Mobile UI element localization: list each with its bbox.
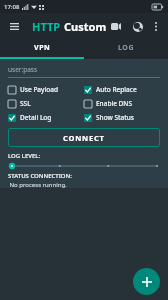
button[interactable]: Global settings	[129, 18, 146, 35]
button[interactable]: Auto Replace	[84, 85, 160, 94]
button[interactable]: CONNECT	[8, 128, 160, 147]
staticText: Auto Replace	[96, 85, 137, 94]
staticText: user:pass	[8, 65, 38, 74]
button[interactable]: Log level slider	[8, 162, 160, 170]
staticText: Show Status	[96, 113, 134, 122]
staticText: VPN	[34, 43, 51, 53]
staticText: LOG LEVEL:	[8, 152, 41, 160]
button[interactable]: Open navigation menu	[6, 18, 22, 34]
staticText: SSL	[20, 99, 31, 108]
staticText: HTTP	[32, 19, 61, 34]
button[interactable]: More options	[149, 19, 162, 33]
button[interactable]: Add configuration	[133, 268, 160, 295]
staticText: CONNECT	[63, 133, 105, 143]
staticText: No process running.	[8, 181, 67, 188]
staticText: Enable DNS	[96, 99, 132, 108]
button[interactable]: Detail Log	[8, 113, 84, 122]
staticText: LOG	[118, 43, 135, 53]
staticText: 17:08	[4, 3, 20, 11]
button[interactable]: SSL	[8, 99, 84, 108]
button[interactable]: VPN	[0, 39, 84, 57]
staticText: STATUS CONNECTION:	[8, 172, 72, 180]
button[interactable]: user:pass	[8, 65, 160, 78]
button[interactable]: Video	[107, 18, 124, 35]
button[interactable]: Use Payload	[8, 85, 84, 94]
button[interactable]: LOG	[84, 39, 168, 57]
staticText: Custom	[64, 19, 107, 34]
button[interactable]: Show Status	[84, 113, 160, 122]
staticText: Detail Log	[20, 113, 52, 122]
staticText: Use Payload	[20, 85, 58, 94]
button[interactable]: Enable DNS	[84, 99, 160, 108]
